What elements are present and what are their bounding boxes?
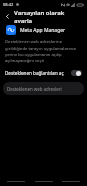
- staticText: Desteklenen web adreslerine girildiğinde…: [5, 39, 82, 63]
- staticText: Desteklenen web adresleri: [7, 86, 62, 92]
- button[interactable]: Son kullanılanlar: [4, 177, 28, 185]
- button[interactable]: Desteklenen web adresleri: [3, 82, 84, 95]
- button[interactable]: Geri: [2, 11, 13, 22]
- staticText: Meta App Manager: [20, 27, 66, 34]
- button[interactable]: Geri: [59, 177, 83, 185]
- staticText: Desteklenen bağlantıları aç: [5, 70, 64, 76]
- button[interactable]: Ana ekran: [32, 177, 56, 185]
- button[interactable]: Desteklenen bağlantıları aç: [0, 67, 87, 79]
- staticText: Varsayılan olarak ayarla: [14, 9, 83, 23]
- button[interactable]: Meta App Manager: [0, 23, 87, 37]
- staticText: 08:42: [3, 2, 14, 7]
- button[interactable]: Desteklenen bağlantıları aç: [71, 70, 82, 76]
